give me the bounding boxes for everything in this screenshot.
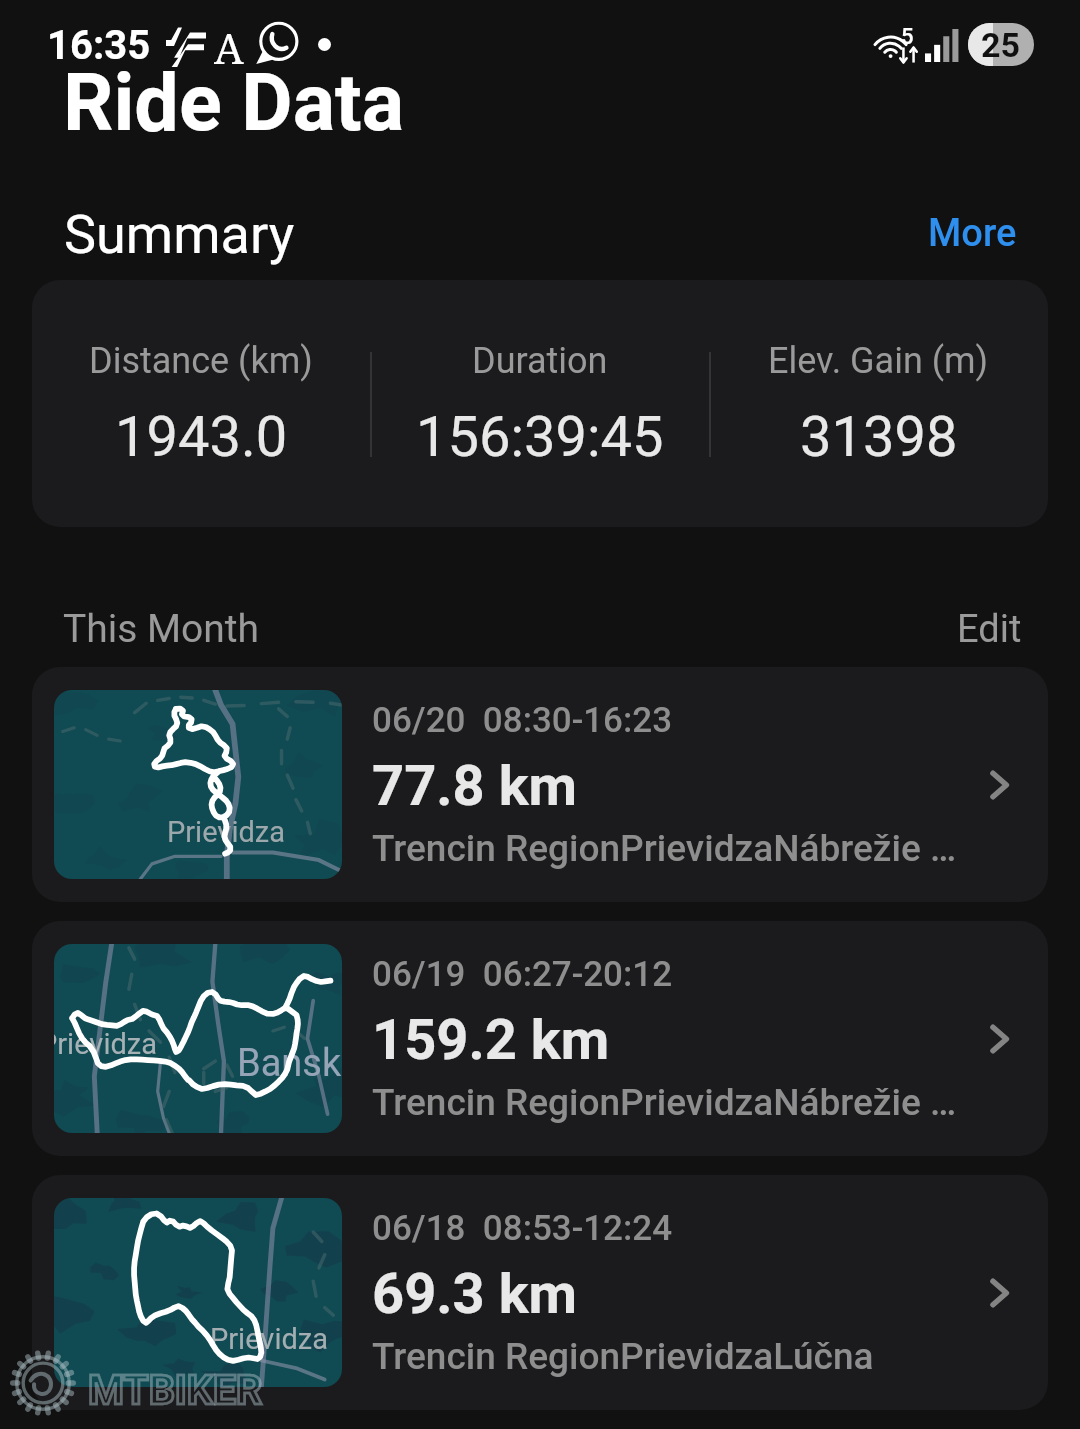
staticText: Banska — [237, 1041, 342, 1086]
button[interactable]: Prievidza — [32, 1175, 1048, 1410]
staticText: Distance (km) — [89, 340, 313, 382]
staticText: This Month — [63, 606, 260, 652]
button[interactable]: Prievidza — [32, 921, 1048, 1156]
staticText: 16:35 — [47, 22, 151, 69]
staticText: 06/18 08:53-12:24 — [372, 1208, 673, 1249]
staticText: Elev. Gain (m) — [768, 340, 989, 382]
staticText: Prievidza — [210, 1322, 328, 1356]
staticText: More — [928, 211, 1017, 256]
staticText: Ride Data — [63, 57, 405, 150]
staticText: A — [214, 19, 244, 76]
staticText: Summary — [64, 203, 295, 266]
button[interactable]: Distance (km) — [32, 280, 1048, 527]
staticText: Trencin RegionPrievidzaNábrežie … — [372, 1081, 957, 1124]
staticText: 06/19 06:27-20:12 — [372, 954, 673, 995]
staticText: Duration — [472, 340, 608, 382]
staticText: 69.3 km — [372, 1261, 578, 1327]
staticText: 156:39:45 — [416, 404, 664, 470]
staticText: 25 — [981, 25, 1021, 65]
staticText: 1943.0 — [115, 404, 288, 470]
staticText: Trencin RegionPrievidzaNábrežie … — [372, 827, 957, 870]
staticText: 77.8 km — [372, 753, 578, 819]
staticText: 159.2 km — [372, 1007, 610, 1073]
button[interactable]: More — [913, 201, 1032, 266]
button[interactable]: Edit — [942, 597, 1037, 662]
staticText: 31398 — [800, 404, 958, 470]
staticText: Prievidza — [167, 815, 285, 849]
staticText: 06/20 08:30-16:23 — [372, 700, 673, 741]
button[interactable]: Summary — [64, 203, 295, 266]
button[interactable]: Open ride details — [970, 1011, 1026, 1067]
staticText: 5 — [901, 24, 914, 50]
staticText: MTBIKER — [88, 1366, 263, 1414]
staticText: Trencin RegionPrievidzaLúčna — [372, 1335, 874, 1378]
button[interactable]: Open ride details — [970, 757, 1026, 813]
button[interactable]: This Month — [63, 606, 260, 652]
button[interactable]: Open ride details — [970, 1265, 1026, 1321]
staticText: Edit — [957, 607, 1022, 652]
button[interactable]: Prievidza — [32, 667, 1048, 902]
staticText: Prievidza — [54, 1027, 157, 1061]
